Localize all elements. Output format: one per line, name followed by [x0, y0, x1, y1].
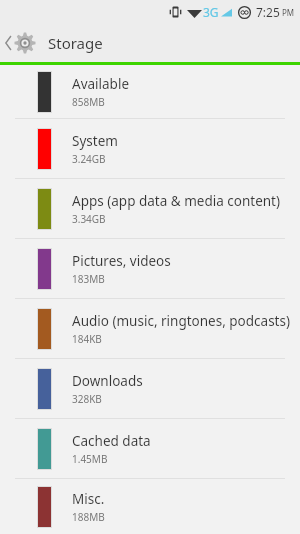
- button[interactable]: Downloads: [0, 359, 300, 418]
- staticText: 7:25: [256, 4, 280, 20]
- staticText: 1.45MB: [72, 452, 108, 466]
- button[interactable]: Available: [0, 65, 300, 118]
- staticText: Misc.: [72, 490, 105, 508]
- staticText: Apps (app data & media content): [72, 192, 281, 210]
- staticText: 328KB: [72, 392, 102, 406]
- staticText: PM: [282, 7, 295, 18]
- staticText: System: [72, 132, 118, 150]
- button[interactable]: Audio (music, ringtones, podcasts): [0, 299, 300, 358]
- staticText: 858MB: [72, 95, 105, 109]
- button[interactable]: Cached data: [0, 419, 300, 478]
- staticText: 3.34GB: [72, 212, 106, 226]
- staticText: 3.24GB: [72, 152, 106, 166]
- staticText: Available: [72, 75, 129, 93]
- button[interactable]: Apps (app data & media content): [0, 179, 300, 238]
- staticText: 183MB: [72, 272, 105, 286]
- staticText: 3G: [203, 4, 219, 20]
- staticText: Cached data: [72, 432, 151, 450]
- button[interactable]: Navigate up: [0, 24, 40, 62]
- button[interactable]: Pictures, videos: [0, 239, 300, 298]
- staticText: Audio (music, ringtones, podcasts): [72, 312, 290, 330]
- staticText: Storage: [48, 33, 103, 53]
- button[interactable]: Misc.: [0, 479, 300, 534]
- staticText: Pictures, videos: [72, 252, 171, 270]
- button[interactable]: System: [0, 119, 300, 178]
- staticText: Downloads: [72, 372, 143, 390]
- staticText: 184KB: [72, 332, 102, 346]
- staticText: 188MB: [72, 510, 105, 524]
